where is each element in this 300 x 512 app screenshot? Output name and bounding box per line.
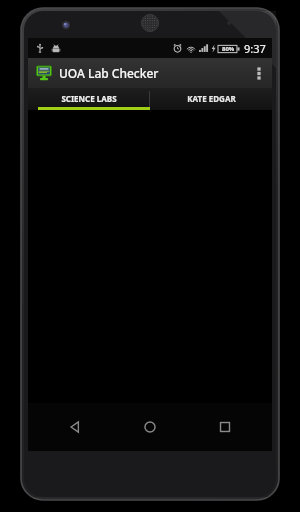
button[interactable]: KATE EDGAR xyxy=(150,88,272,110)
button[interactable]: More options xyxy=(246,58,272,88)
button[interactable]: Home xyxy=(122,403,178,451)
button[interactable]: SCIENCE LABS xyxy=(28,88,149,110)
button[interactable]: Back xyxy=(47,403,103,451)
button[interactable]: Recent apps xyxy=(197,403,253,451)
staticText: 80% xyxy=(222,45,235,53)
staticText: KATE EDGAR xyxy=(187,93,236,104)
staticText: 9:37 xyxy=(244,41,266,56)
staticText: SCIENCE LABS xyxy=(61,93,117,104)
staticText: UOA Lab Checker xyxy=(59,65,159,81)
